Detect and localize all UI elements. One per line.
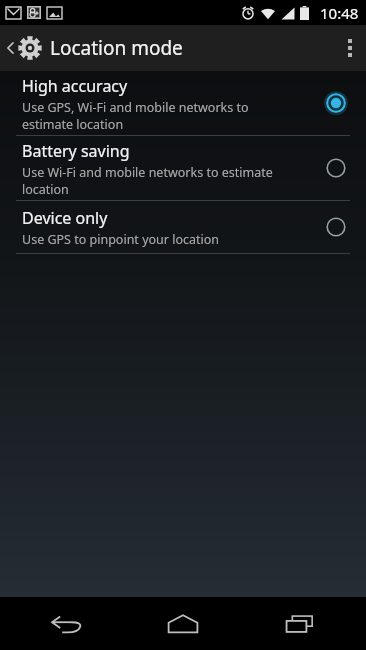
button[interactable]: High accuracy <box>0 71 366 135</box>
button[interactable]: Home <box>133 597 233 650</box>
button[interactable]: Back <box>17 597 117 650</box>
staticText: Battery saving <box>22 140 130 162</box>
staticText: Device only <box>22 207 108 229</box>
staticText: Use GPS to pinpoint your location <box>22 231 220 248</box>
button[interactable]: Device only <box>0 201 366 253</box>
staticText: Location mode <box>50 35 183 61</box>
button[interactable]: Battery saving <box>0 136 366 200</box>
button[interactable]: More options <box>334 29 366 67</box>
staticText: Use Wi-Fi and mobile networks to estimat… <box>22 164 273 197</box>
staticText: High accuracy <box>22 75 128 97</box>
button[interactable]: Navigate up <box>0 29 49 67</box>
button[interactable]: Recent apps <box>250 597 350 650</box>
staticText: 10:48 <box>320 3 359 23</box>
staticText: Use GPS, Wi-Fi and mobile networks to es… <box>22 99 249 132</box>
